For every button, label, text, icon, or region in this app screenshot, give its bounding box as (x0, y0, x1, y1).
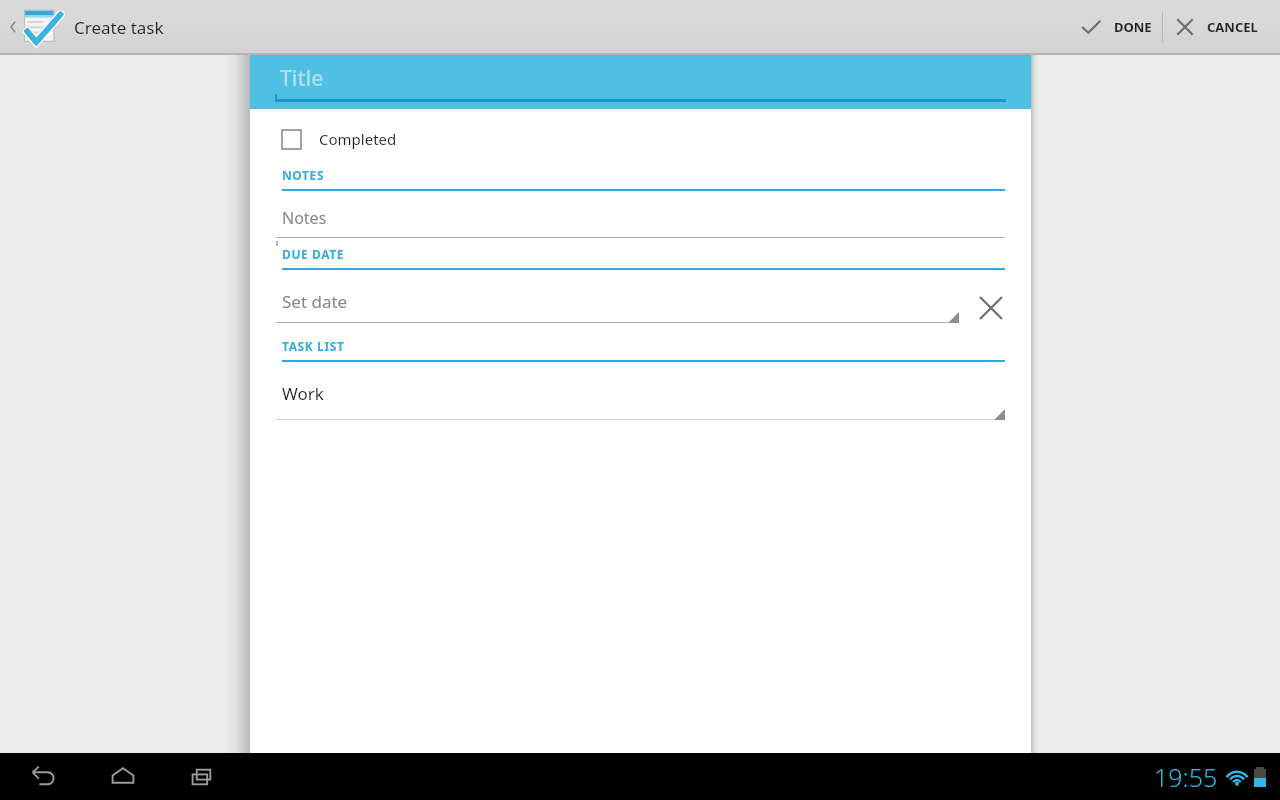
staticText: Notes (282, 207, 327, 229)
button[interactable]: Title (250, 55, 1031, 109)
staticText: Completed (319, 129, 397, 149)
other: Up (8, 16, 18, 38)
staticText: CANCEL (1207, 18, 1258, 36)
staticText: Work (282, 382, 324, 405)
button[interactable]: Work (250, 362, 1031, 429)
button[interactable]: Notes (250, 191, 1031, 246)
button[interactable]: DONE (1068, 0, 1162, 53)
button[interactable]: Up (4, 6, 168, 48)
staticText: DUE DATE (282, 246, 345, 262)
staticText: 19:55 (1154, 760, 1218, 794)
staticText: Create task (74, 16, 164, 39)
staticText: DONE (1114, 18, 1152, 36)
button[interactable]: Back (14, 753, 72, 800)
staticText: NOTES (282, 167, 325, 183)
staticText: Set date (282, 290, 348, 313)
staticText: TASK LIST (282, 338, 345, 354)
button[interactable]: CANCEL (1163, 0, 1268, 53)
button[interactable]: Clear date (971, 294, 1011, 334)
staticText: Title (280, 64, 324, 93)
button[interactable]: Set date (276, 290, 959, 338)
button[interactable]: Home (94, 753, 152, 800)
button[interactable]: Completed (250, 123, 1031, 155)
button[interactable]: Recent apps (174, 753, 232, 800)
